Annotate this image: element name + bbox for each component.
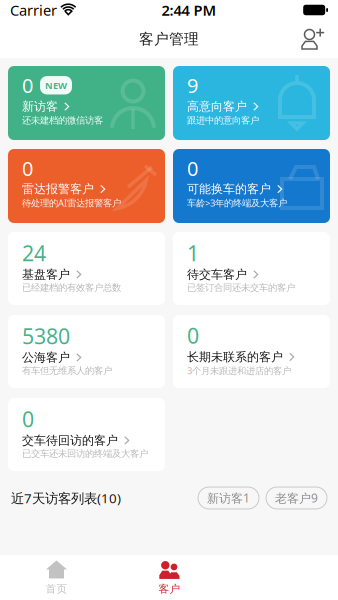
- staticText: 已签订合同还未交车的客户: [187, 282, 295, 293]
- staticText: 待处理的AI雷达报警客户: [22, 197, 121, 209]
- staticText: 0: [187, 155, 198, 182]
- staticText: 客户管理: [139, 30, 199, 48]
- staticText: 5380: [22, 322, 70, 350]
- staticText: 24: [22, 239, 46, 267]
- staticText: NEW: [45, 79, 67, 91]
- button[interactable]: 首页: [0, 554, 113, 600]
- button[interactable]: 0: [8, 398, 165, 471]
- staticText: 车龄>3年的终端及大客户: [187, 197, 287, 209]
- staticText: 近7天访客列表(10): [11, 489, 121, 507]
- button[interactable]: 老客户9: [266, 487, 327, 509]
- staticText: 老客户9: [275, 490, 318, 506]
- staticText: 高意向客户: [187, 99, 247, 114]
- staticText: 待交车客户: [187, 267, 247, 282]
- button[interactable]: 24: [8, 232, 165, 305]
- staticText: 公海客户: [22, 350, 70, 365]
- staticText: 跟进中的意向客户: [187, 114, 259, 126]
- staticText: 0: [22, 72, 33, 99]
- staticText: 雷达报警客户: [22, 182, 94, 196]
- staticText: 3个月未跟进和进店的客户: [187, 364, 291, 377]
- staticText: 有车但无维系人的客户: [22, 365, 112, 376]
- button[interactable]: 0: [173, 149, 330, 223]
- staticText: 1: [187, 239, 199, 267]
- staticText: 新访客: [22, 99, 58, 114]
- button[interactable]: 添加客户: [293, 22, 333, 56]
- staticText: 基盘客户: [22, 267, 70, 282]
- button[interactable]: 0: [8, 66, 165, 140]
- staticText: 0: [22, 405, 34, 433]
- button[interactable]: 0: [173, 315, 330, 388]
- staticText: 已交车还未回访的终端及大客户: [22, 448, 148, 459]
- button[interactable]: 新访客1: [198, 487, 259, 509]
- staticText: Carrier: [10, 0, 57, 20]
- staticText: 交车待回访的客户: [22, 433, 118, 448]
- staticText: 可能换车的客户: [187, 182, 271, 196]
- button[interactable]: 客户: [113, 554, 226, 600]
- staticText: 还未建档的微信访客: [22, 114, 103, 126]
- staticText: 9: [187, 72, 198, 99]
- staticText: 2:44 PM: [162, 0, 217, 20]
- button[interactable]: 9: [173, 66, 330, 140]
- staticText: 首页: [45, 582, 67, 595]
- button[interactable]: 0: [8, 149, 165, 223]
- staticText: 0: [22, 155, 33, 182]
- staticText: 客户: [158, 582, 180, 595]
- button[interactable]: 1: [173, 232, 330, 305]
- staticText: 新访客1: [207, 490, 250, 506]
- staticText: 0: [187, 321, 199, 350]
- staticText: 已经建档的有效客户总数: [22, 282, 121, 293]
- staticText: 长期未联系的客户: [187, 350, 283, 364]
- button[interactable]: 5380: [8, 315, 165, 388]
